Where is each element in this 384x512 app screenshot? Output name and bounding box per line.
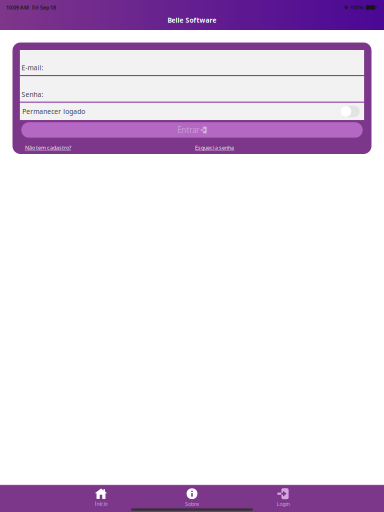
staticText: Belle Software <box>167 16 216 25</box>
staticText: Esqueci a senha <box>195 144 234 151</box>
staticText: E-mail: <box>21 63 43 72</box>
staticText: Entrar <box>177 125 199 135</box>
button[interactable]: Início <box>75 487 127 509</box>
button[interactable]: Sobre <box>166 487 218 509</box>
staticText: Início <box>94 500 107 507</box>
staticText: Login <box>276 500 289 507</box>
staticText: Não tem cadastro? <box>25 144 71 151</box>
button[interactable]: Não tem cadastro? <box>25 144 71 151</box>
staticText: 100% <box>350 4 364 11</box>
staticText: Sobre <box>185 500 199 507</box>
button[interactable]: Esqueci a senha <box>195 144 234 151</box>
staticText: Permanecer logado <box>22 107 85 116</box>
button[interactable]: Login <box>257 487 309 509</box>
button[interactable]: Entrar <box>21 122 363 138</box>
staticText: Fri Sep 18 <box>29 4 56 11</box>
staticText: 10:09 AM <box>6 4 29 11</box>
staticText: Senha: <box>21 90 43 99</box>
